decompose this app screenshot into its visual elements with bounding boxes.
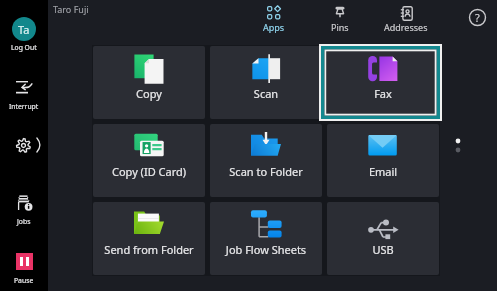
- button[interactable]: Addresses: [376, 5, 436, 33]
- staticText: Fax: [327, 86, 439, 101]
- staticText: Job Flow Sheets: [210, 242, 322, 257]
- staticText: Copy: [93, 86, 205, 101]
- button[interactable]: Jobs: [0, 194, 48, 226]
- staticText: Interrupt: [9, 102, 39, 111]
- button[interactable]: Copy (ID Card): [93, 124, 205, 197]
- button[interactable]: Help: [469, 9, 486, 26]
- staticText: USB: [327, 242, 439, 257]
- button[interactable]: USB: [327, 202, 439, 275]
- button[interactable]: Fax: [327, 46, 439, 119]
- button[interactable]: Pins: [310, 5, 370, 33]
- button[interactable]: Interrupt: [0, 81, 48, 111]
- staticText: Apps: [263, 21, 285, 33]
- staticText: Scan: [210, 86, 322, 101]
- button[interactable]: Scan: [210, 46, 322, 119]
- staticText: Ta: [18, 22, 30, 37]
- staticText: Send from Folder: [93, 242, 205, 257]
- button[interactable]: Scan to Folder: [210, 124, 322, 197]
- staticText: Email: [327, 164, 439, 179]
- button[interactable]: Apps: [244, 5, 304, 33]
- staticText: Taro Fuji: [53, 3, 89, 15]
- button[interactable]: Ta: [0, 17, 48, 52]
- button[interactable]: Settings: [0, 137, 48, 153]
- button[interactable]: Pause: [0, 253, 48, 285]
- button[interactable]: Email: [327, 124, 439, 197]
- button[interactable]: Copy: [93, 46, 205, 119]
- staticText: ?: [475, 10, 480, 25]
- staticText: Addresses: [384, 21, 428, 33]
- staticText: Scan to Folder: [210, 164, 322, 179]
- staticText: Log Out: [11, 43, 37, 52]
- staticText: Jobs: [17, 217, 31, 226]
- staticText: Pause: [14, 276, 34, 285]
- staticText: Copy (ID Card): [93, 164, 205, 179]
- button[interactable]: Send from Folder: [93, 202, 205, 275]
- staticText: Pins: [331, 21, 349, 33]
- button[interactable]: Job Flow Sheets: [210, 202, 322, 275]
